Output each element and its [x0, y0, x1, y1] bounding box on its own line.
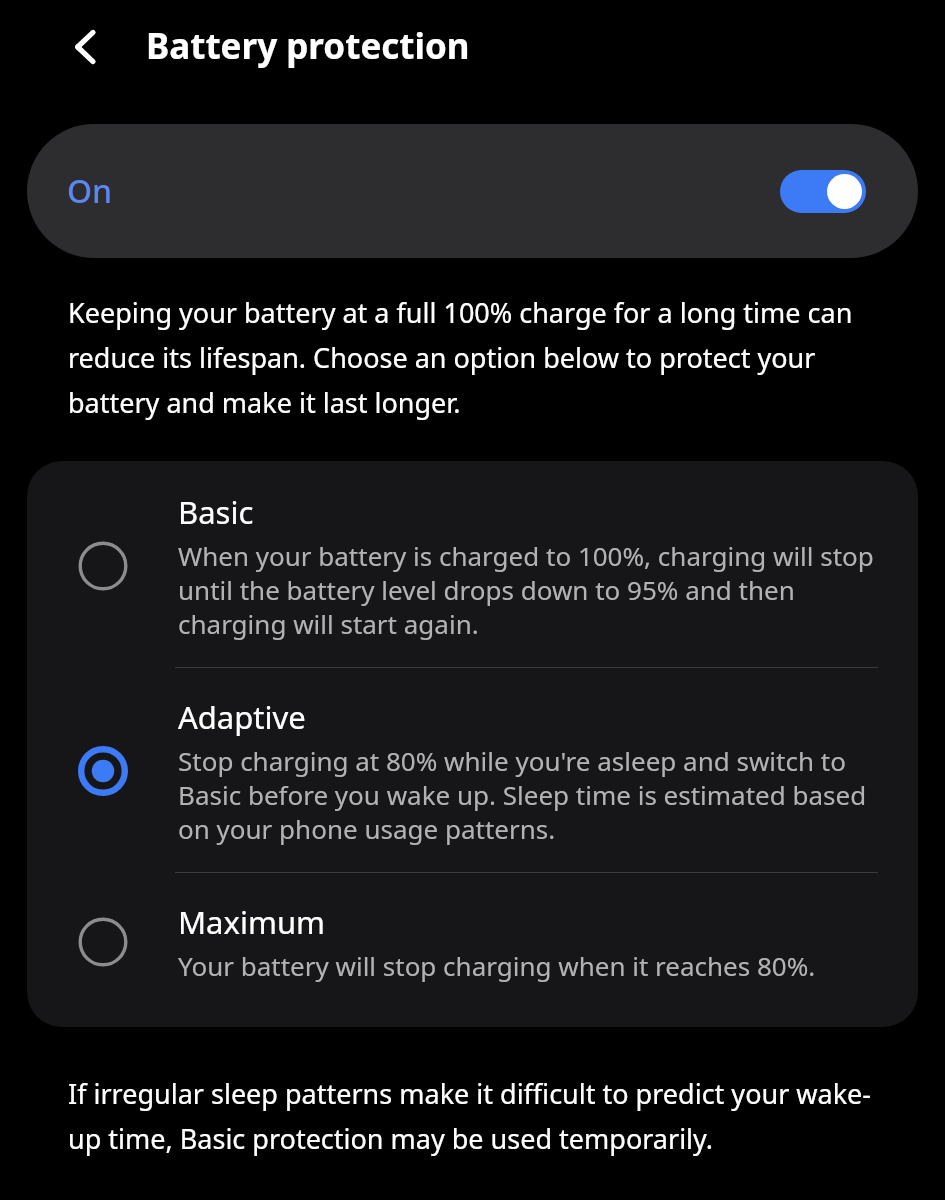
- staticText: Adaptive: [178, 696, 306, 738]
- staticText: Battery protection: [146, 22, 470, 70]
- button[interactable]: Maximum: [27, 873, 918, 1027]
- staticText: When your battery is charged to 100%, ch…: [178, 538, 878, 641]
- button[interactable]: Adaptive: [27, 668, 918, 872]
- staticText: Keeping your battery at a full 100% char…: [68, 294, 883, 421]
- staticText: Your battery will stop charging when it …: [178, 948, 816, 983]
- staticText: If irregular sleep patterns make it diff…: [68, 1075, 883, 1157]
- staticText: Basic: [178, 491, 254, 533]
- button[interactable]: Basic: [27, 461, 918, 667]
- staticText: Maximum: [178, 901, 326, 943]
- button[interactable]: On: [27, 124, 918, 258]
- staticText: Stop charging at 80% while you're asleep…: [178, 743, 878, 846]
- staticText: On: [67, 169, 113, 213]
- button[interactable]: Back: [56, 17, 116, 77]
